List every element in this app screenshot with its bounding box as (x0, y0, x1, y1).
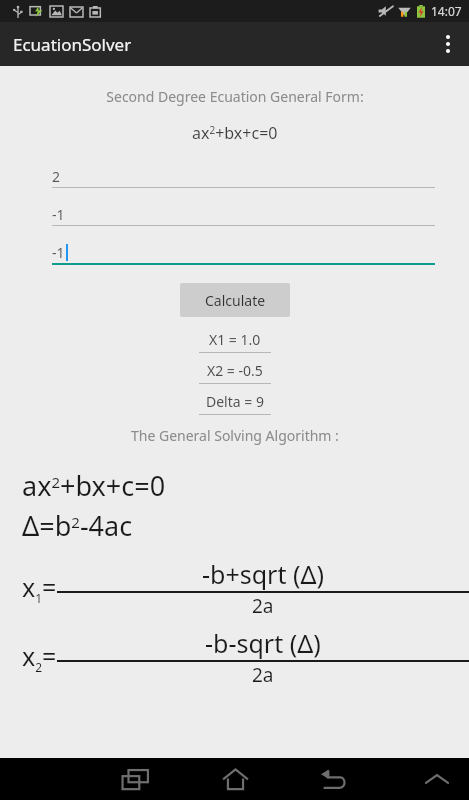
staticText: 14:07 (431, 3, 462, 19)
button[interactable]: -1 (34, 203, 435, 226)
staticText: -b-sqrt (Δ) (205, 626, 321, 660)
button[interactable]: 2 (34, 165, 435, 188)
staticText: -b+sqrt (Δ) (202, 557, 324, 591)
staticText: -1 (52, 243, 65, 262)
staticText: -1 (52, 205, 65, 224)
staticText: ax2+bx+c=0 (192, 122, 278, 144)
staticText: 2 (52, 167, 61, 186)
staticText: Second Degree Ecuation General Form: (106, 87, 364, 106)
staticText: Delta = 9 (206, 392, 264, 411)
button[interactable]: Calculate (180, 283, 290, 317)
staticText: x2= (22, 639, 57, 676)
button[interactable]: Home (210, 758, 260, 800)
button[interactable]: -1 (34, 241, 435, 265)
staticText: EcuationSolver (13, 33, 132, 56)
button[interactable]: Recents (110, 758, 160, 800)
staticText: 2a (252, 662, 274, 688)
button[interactable]: Back (308, 758, 358, 800)
button[interactable]: More options (427, 22, 469, 66)
staticText: Calculate (205, 291, 266, 310)
staticText: 2a (252, 593, 274, 619)
staticText: X1 = 1.0 (209, 330, 261, 349)
staticText: ax2+bx+c=0 (22, 467, 166, 504)
staticText: x1= (22, 570, 57, 607)
button[interactable]: Expand (412, 758, 462, 800)
staticText: X2 = -0.5 (207, 361, 263, 380)
staticText: Δ=b2-4ac (22, 507, 133, 544)
staticText: The General Solving Algorithm : (131, 426, 339, 445)
